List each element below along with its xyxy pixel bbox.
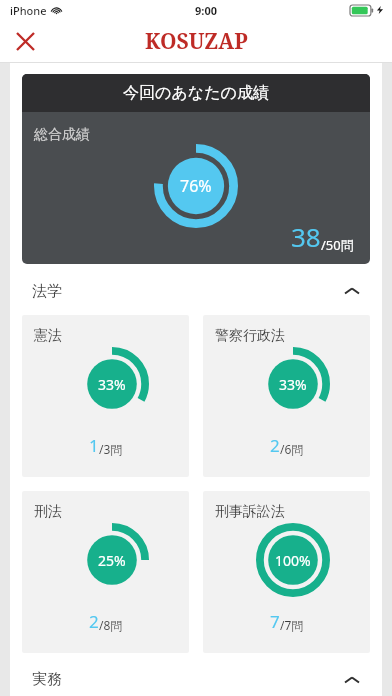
button[interactable]: 警察行政法 (203, 315, 370, 477)
staticText: KOSUZAP (145, 27, 248, 56)
staticText: 7 (270, 610, 280, 633)
staticText: 33% (98, 375, 126, 394)
staticText: /7問 (280, 617, 304, 633)
staticText: 実務 (32, 670, 62, 689)
staticText: /8問 (99, 617, 123, 633)
staticText: 刑法 (34, 503, 62, 521)
staticText: 2 (89, 610, 99, 633)
staticText: /3問 (99, 441, 123, 457)
staticText: 9:00 (195, 3, 217, 18)
staticText: 33% (279, 375, 307, 394)
staticText: 2 (270, 434, 280, 457)
staticText: iPhone (10, 3, 47, 18)
staticText: /6問 (280, 441, 304, 457)
staticText: /50問 (321, 236, 354, 254)
staticText: 38 (291, 219, 321, 254)
staticText: 1 (89, 434, 99, 457)
staticText: 法学 (32, 282, 62, 301)
staticText: 今回のあなたの成績 (123, 83, 269, 103)
staticText: 25% (98, 551, 126, 570)
staticText: 憲法 (34, 327, 62, 345)
button[interactable]: 実務 (10, 663, 382, 696)
staticText: 総合成績 (34, 126, 90, 144)
button[interactable]: 法学 (10, 272, 382, 310)
button[interactable]: 刑事訴訟法 (203, 491, 370, 653)
button[interactable]: Close (8, 24, 42, 58)
staticText: 警察行政法 (215, 327, 285, 345)
staticText: 100% (275, 551, 311, 570)
button[interactable]: 憲法 (22, 315, 189, 477)
button[interactable]: 刑法 (22, 491, 189, 653)
staticText: 76% (180, 175, 212, 197)
button[interactable]: 今回のあなたの成績 (22, 74, 370, 264)
staticText: 刑事訴訟法 (215, 503, 285, 521)
